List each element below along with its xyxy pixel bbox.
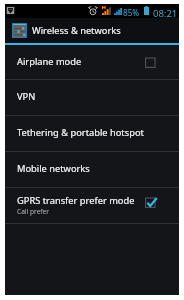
- staticText: 08:21: [153, 7, 178, 20]
- button[interactable]: Airplane mode: [5, 45, 179, 79]
- staticText: Call prefer: [17, 207, 50, 216]
- staticText: Airplane mode: [17, 55, 82, 68]
- staticText: Wireless & networks: [32, 24, 121, 37]
- staticText: GPRS transfer prefer mode: [17, 194, 135, 207]
- button[interactable]: Tethering & portable hotspot: [5, 116, 179, 151]
- button[interactable]: Mobile networks: [5, 152, 179, 187]
- button[interactable]: VPN: [5, 80, 179, 115]
- button[interactable]: GPRS transfer prefer mode: [5, 188, 179, 223]
- staticText: Mobile networks: [17, 162, 90, 175]
- staticText: 85%: [123, 7, 140, 18]
- button[interactable]: Wireless and networks: [5, 18, 179, 43]
- staticText: VPN: [17, 90, 36, 103]
- other: Wireless and networks: [12, 23, 27, 38]
- staticText: Tethering & portable hotspot: [17, 126, 144, 139]
